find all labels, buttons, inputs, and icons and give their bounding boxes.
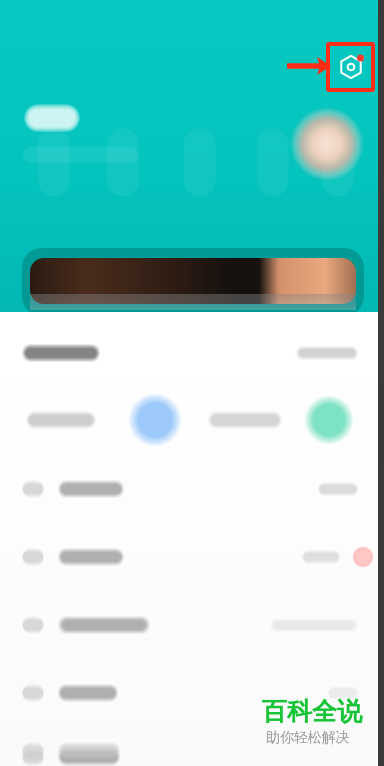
button[interactable]: Quick action [304, 395, 354, 445]
button[interactable] [28, 254, 358, 310]
button[interactable]: Quick action [128, 393, 182, 447]
button[interactable]: Settings [337, 53, 365, 81]
button[interactable] [208, 411, 282, 429]
staticText: 百科全说 [262, 696, 362, 727]
staticText: 助你轻松解决 [266, 729, 350, 747]
button[interactable] [0, 612, 384, 638]
button[interactable] [0, 736, 384, 766]
button[interactable] [0, 338, 384, 368]
button[interactable] [26, 411, 96, 429]
button[interactable] [0, 748, 384, 766]
button[interactable] [0, 476, 384, 502]
button[interactable] [0, 544, 384, 570]
button[interactable] [0, 680, 384, 706]
button[interactable] [24, 104, 80, 132]
button[interactable]: Profile avatar [290, 107, 364, 181]
